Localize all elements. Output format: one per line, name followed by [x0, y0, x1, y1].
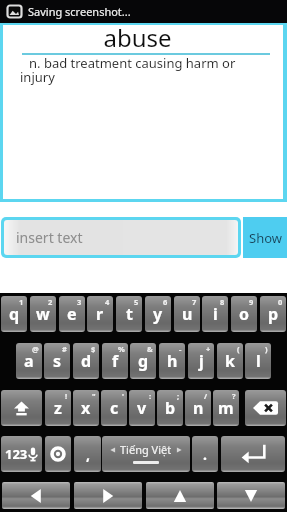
- staticText: v: [137, 397, 147, 419]
- button[interactable]: x: [73, 390, 99, 426]
- staticText: l: [256, 350, 261, 372]
- staticText: o: [239, 303, 250, 325]
- staticText: d: [81, 350, 92, 372]
- button[interactable]: c: [101, 390, 127, 426]
- button[interactable]: z: [45, 390, 71, 426]
- staticText: u: [182, 303, 193, 325]
- button[interactable]: o: [231, 296, 257, 332]
- button[interactable]: Shift: [1, 390, 42, 426]
- staticText: Show: [249, 229, 282, 247]
- button[interactable]: w: [30, 296, 56, 332]
- staticText: ": [92, 391, 96, 401]
- staticText: 1: [19, 297, 24, 307]
- staticText: x: [81, 397, 91, 419]
- button[interactable]: t: [116, 296, 142, 332]
- staticText: ;: [177, 391, 180, 401]
- staticText: ,: [86, 445, 90, 464]
- staticText: j: [199, 350, 204, 372]
- button[interactable]: u: [174, 296, 200, 332]
- staticText: Tiếng Việt: [120, 442, 172, 457]
- staticText: 7: [192, 297, 197, 307]
- button[interactable]: e: [59, 296, 85, 332]
- button[interactable]: n: [185, 390, 211, 426]
- button[interactable]: a: [16, 343, 42, 379]
- staticText: .: [203, 445, 207, 464]
- staticText: m: [218, 397, 234, 419]
- staticText: z: [54, 397, 62, 419]
- button[interactable]: p: [260, 296, 286, 332]
- button[interactable]: insert text: [4, 220, 238, 255]
- staticText: (: [237, 344, 240, 354]
- button[interactable]: Enter: [221, 436, 285, 472]
- staticText: g: [138, 350, 149, 372]
- button[interactable]: Up: [146, 482, 214, 509]
- button[interactable]: g: [130, 343, 156, 379]
- button[interactable]: Down: [217, 482, 285, 509]
- staticText: :: [149, 391, 152, 401]
- staticText: t: [126, 303, 133, 325]
- staticText: r: [96, 303, 104, 325]
- button[interactable]: Back: [2, 482, 70, 509]
- button[interactable]: Space, Tieng Viet: [102, 436, 190, 472]
- staticText: ): [265, 344, 268, 354]
- button[interactable]: s: [44, 343, 70, 379]
- staticText: k: [225, 350, 235, 372]
- staticText: +: [206, 344, 211, 354]
- staticText: 123: [5, 445, 28, 463]
- staticText: e: [67, 303, 77, 325]
- button[interactable]: .: [192, 436, 218, 472]
- staticText: s: [53, 350, 62, 372]
- button[interactable]: k: [217, 343, 243, 379]
- staticText: i: [213, 303, 218, 325]
- button[interactable]: h: [159, 343, 185, 379]
- staticText: y: [153, 303, 163, 325]
- staticText: !: [65, 391, 68, 401]
- staticText: 8: [220, 297, 225, 307]
- button[interactable]: j: [188, 343, 214, 379]
- staticText: n: [193, 397, 204, 419]
- staticText: -: [179, 344, 182, 354]
- button[interactable]: d: [73, 343, 99, 379]
- staticText: a: [24, 350, 34, 372]
- button[interactable]: y: [145, 296, 171, 332]
- button[interactable]: v: [129, 390, 155, 426]
- button[interactable]: ,: [74, 436, 101, 472]
- button[interactable]: Numbers and voice input: [1, 436, 42, 472]
- button[interactable]: l: [245, 343, 271, 379]
- button[interactable]: i: [202, 296, 228, 332]
- staticText: 2: [48, 297, 53, 307]
- button[interactable]: f: [102, 343, 128, 379]
- button[interactable]: Forward: [74, 482, 142, 509]
- staticText: f: [112, 350, 119, 372]
- staticText: q: [9, 303, 20, 325]
- staticText: b: [165, 397, 176, 419]
- staticText: Saving screenshot...: [28, 4, 131, 19]
- staticText: insert text: [16, 228, 83, 247]
- button[interactable]: r: [87, 296, 113, 332]
- staticText: injury: [20, 68, 55, 86]
- staticText: w: [36, 303, 50, 325]
- staticText: h: [167, 350, 178, 372]
- staticText: 4: [105, 297, 110, 307]
- staticText: 6: [163, 297, 168, 307]
- staticText: p: [268, 303, 279, 325]
- staticText: #: [62, 344, 67, 354]
- staticText: /: [204, 391, 208, 401]
- staticText: ': [122, 391, 124, 401]
- button[interactable]: m: [213, 390, 239, 426]
- staticText: abuse: [3, 21, 272, 54]
- staticText: 9: [249, 297, 254, 307]
- button[interactable]: b: [157, 390, 183, 426]
- staticText: c: [110, 397, 119, 419]
- button[interactable]: q: [1, 296, 27, 332]
- button[interactable]: Backspace: [245, 390, 286, 426]
- staticText: &: [147, 344, 153, 354]
- staticText: %: [118, 344, 125, 354]
- button[interactable]: Settings: [45, 436, 71, 472]
- staticText: n. bad treatment causing harm or: [29, 54, 236, 72]
- staticText: 3: [77, 297, 82, 307]
- button[interactable]: Show: [243, 217, 287, 258]
- staticText: @: [32, 344, 39, 354]
- staticText: 0: [278, 297, 283, 307]
- staticText: $: [91, 344, 96, 354]
